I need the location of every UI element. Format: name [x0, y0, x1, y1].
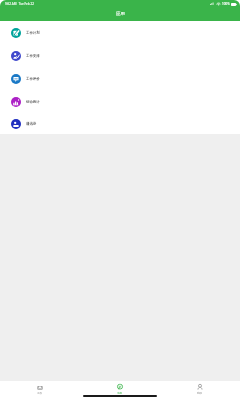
- staticText: 工作安排: [26, 54, 40, 58]
- staticText: 通讯录: [26, 122, 37, 126]
- button[interactable]: 通讯录: [0, 113, 240, 134]
- staticText: 应用: [116, 11, 125, 17]
- staticText: 工作评价: [26, 77, 40, 81]
- button[interactable]: Messages: [80, 381, 160, 400]
- staticText: 100%: [222, 2, 230, 6]
- button[interactable]: 工作计划: [0, 21, 240, 44]
- staticText: 我的: [197, 391, 203, 394]
- button[interactable]: 工作安排: [0, 44, 240, 67]
- staticText: 工作计划: [26, 31, 40, 35]
- button[interactable]: 综合统计: [0, 90, 240, 113]
- button[interactable]: 工作评价: [0, 67, 240, 90]
- button[interactable]: Profile: [160, 381, 240, 400]
- staticText: 9:52 AM Tue Feb 22: [5, 2, 34, 6]
- staticText: 消息: [117, 391, 123, 394]
- staticText: 工作: [37, 391, 43, 394]
- staticText: 综合统计: [26, 100, 40, 104]
- button[interactable]: Work: [0, 381, 80, 400]
